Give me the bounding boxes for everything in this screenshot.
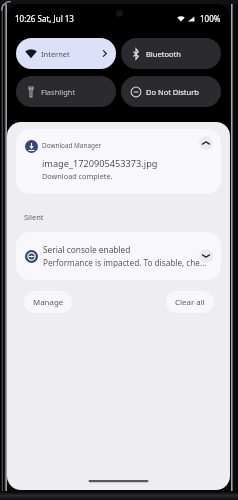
button[interactable]: Bluetooth: [121, 38, 221, 69]
staticText: Do Not Disturb: [146, 87, 214, 97]
staticText: image_1720905453373.jpg: [42, 157, 158, 170]
staticText: Flashlight: [41, 87, 109, 97]
button[interactable]: Internet: [16, 38, 116, 69]
button[interactable]: Expand notification: [199, 249, 213, 263]
staticText: Clear all: [175, 297, 205, 308]
staticText: Download complete.: [42, 171, 113, 181]
button[interactable]: Download Manager: [16, 129, 221, 194]
staticText: 10:26 Sat, Jul 13: [15, 13, 74, 24]
button[interactable]: Serial console enabled: [16, 232, 221, 280]
staticText: Performance is impacted. To disable, che…: [43, 257, 207, 268]
button[interactable]: Do Not Disturb: [121, 76, 221, 107]
staticText: Silent: [24, 212, 44, 222]
staticText: Internet: [41, 49, 100, 59]
button[interactable]: Flashlight: [16, 76, 116, 107]
staticText: 100%: [200, 13, 221, 24]
staticText: Bluetooth: [146, 49, 214, 59]
button[interactable]: Collapse notification: [199, 136, 213, 150]
button[interactable]: Manage: [24, 291, 72, 313]
button[interactable]: Clear all: [166, 291, 214, 313]
staticText: Serial console enabled: [43, 244, 131, 255]
staticText: Download Manager: [42, 141, 102, 150]
staticText: Manage: [33, 297, 64, 308]
